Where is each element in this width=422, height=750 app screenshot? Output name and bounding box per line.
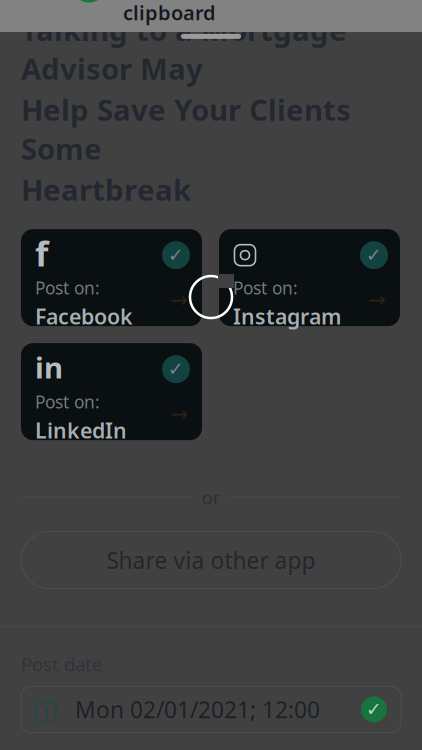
staticText: ✓ bbox=[366, 244, 382, 266]
staticText: LinkedIn bbox=[35, 416, 127, 444]
staticText: Share via other app bbox=[106, 545, 315, 575]
staticText: → bbox=[170, 402, 188, 426]
staticText: Post on: bbox=[35, 390, 100, 413]
button[interactable]: ✓ bbox=[21, 352, 202, 449]
staticText: Instagram bbox=[233, 302, 341, 330]
staticText: in bbox=[35, 348, 63, 387]
button[interactable]: ✓ bbox=[21, 238, 202, 335]
staticText: Help Save Your Clients Some bbox=[21, 90, 351, 168]
staticText: → bbox=[368, 288, 386, 312]
staticText: hashtags copied to clipboard bbox=[123, 0, 310, 26]
staticText: ✓ bbox=[366, 699, 382, 720]
staticText: ✓ bbox=[168, 358, 184, 380]
staticText: Talking to a Mortgage Advisor May bbox=[21, 10, 347, 88]
staticText: 1 bbox=[42, 704, 49, 720]
staticText: Heartbreak bbox=[21, 170, 191, 209]
button[interactable]: ✓ bbox=[219, 238, 400, 335]
staticText: Post on: bbox=[233, 276, 298, 299]
staticText: or bbox=[201, 485, 220, 510]
button[interactable]: Share via other app bbox=[21, 532, 401, 589]
staticText: Post date bbox=[21, 652, 103, 676]
staticText: → bbox=[170, 288, 188, 312]
staticText: Facebook bbox=[35, 302, 133, 330]
staticText: Post on: bbox=[35, 276, 100, 299]
staticText: Mon 02/01/2021; 12:00 bbox=[75, 694, 320, 724]
staticText: f bbox=[35, 230, 48, 276]
button[interactable]: 1 bbox=[21, 686, 401, 732]
staticText: ✓ bbox=[168, 244, 184, 266]
